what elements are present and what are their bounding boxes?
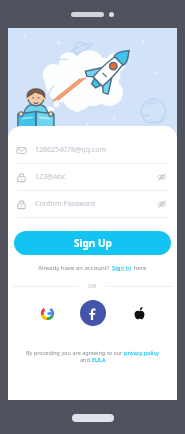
button[interactable]: Sign up with Google [34,300,60,326]
button[interactable]: Sign Up [14,231,171,255]
staticText: Sign in [112,264,132,272]
staticText: Already have an account? [38,264,112,272]
staticText: 1286254078@qq.com [35,145,168,155]
button[interactable]: Sign up with Facebook [80,300,106,326]
staticText: and [80,356,92,363]
button[interactable]: 123@Abc [8,164,177,191]
staticText: 123@Abc [35,172,156,182]
staticText: Sign Up [74,236,112,250]
button[interactable]: EULA [92,356,106,363]
staticText: Confirm Password [35,199,156,209]
button[interactable]: Show password [156,198,168,210]
button[interactable]: 1286254078@qq.com [8,137,177,164]
staticText: OR [88,282,97,290]
button[interactable]: Confirm Password [8,191,177,218]
staticText: privacy policy [124,349,159,356]
button[interactable]: Sign in [112,264,132,272]
staticText: By proceding you are agreeing to our [26,349,124,356]
button[interactable]: Show password [156,171,168,183]
staticText: EULA [92,356,106,363]
staticText: here [132,264,147,272]
button[interactable]: Sign up with Apple [126,300,152,326]
button[interactable]: privacy policy [124,349,159,356]
